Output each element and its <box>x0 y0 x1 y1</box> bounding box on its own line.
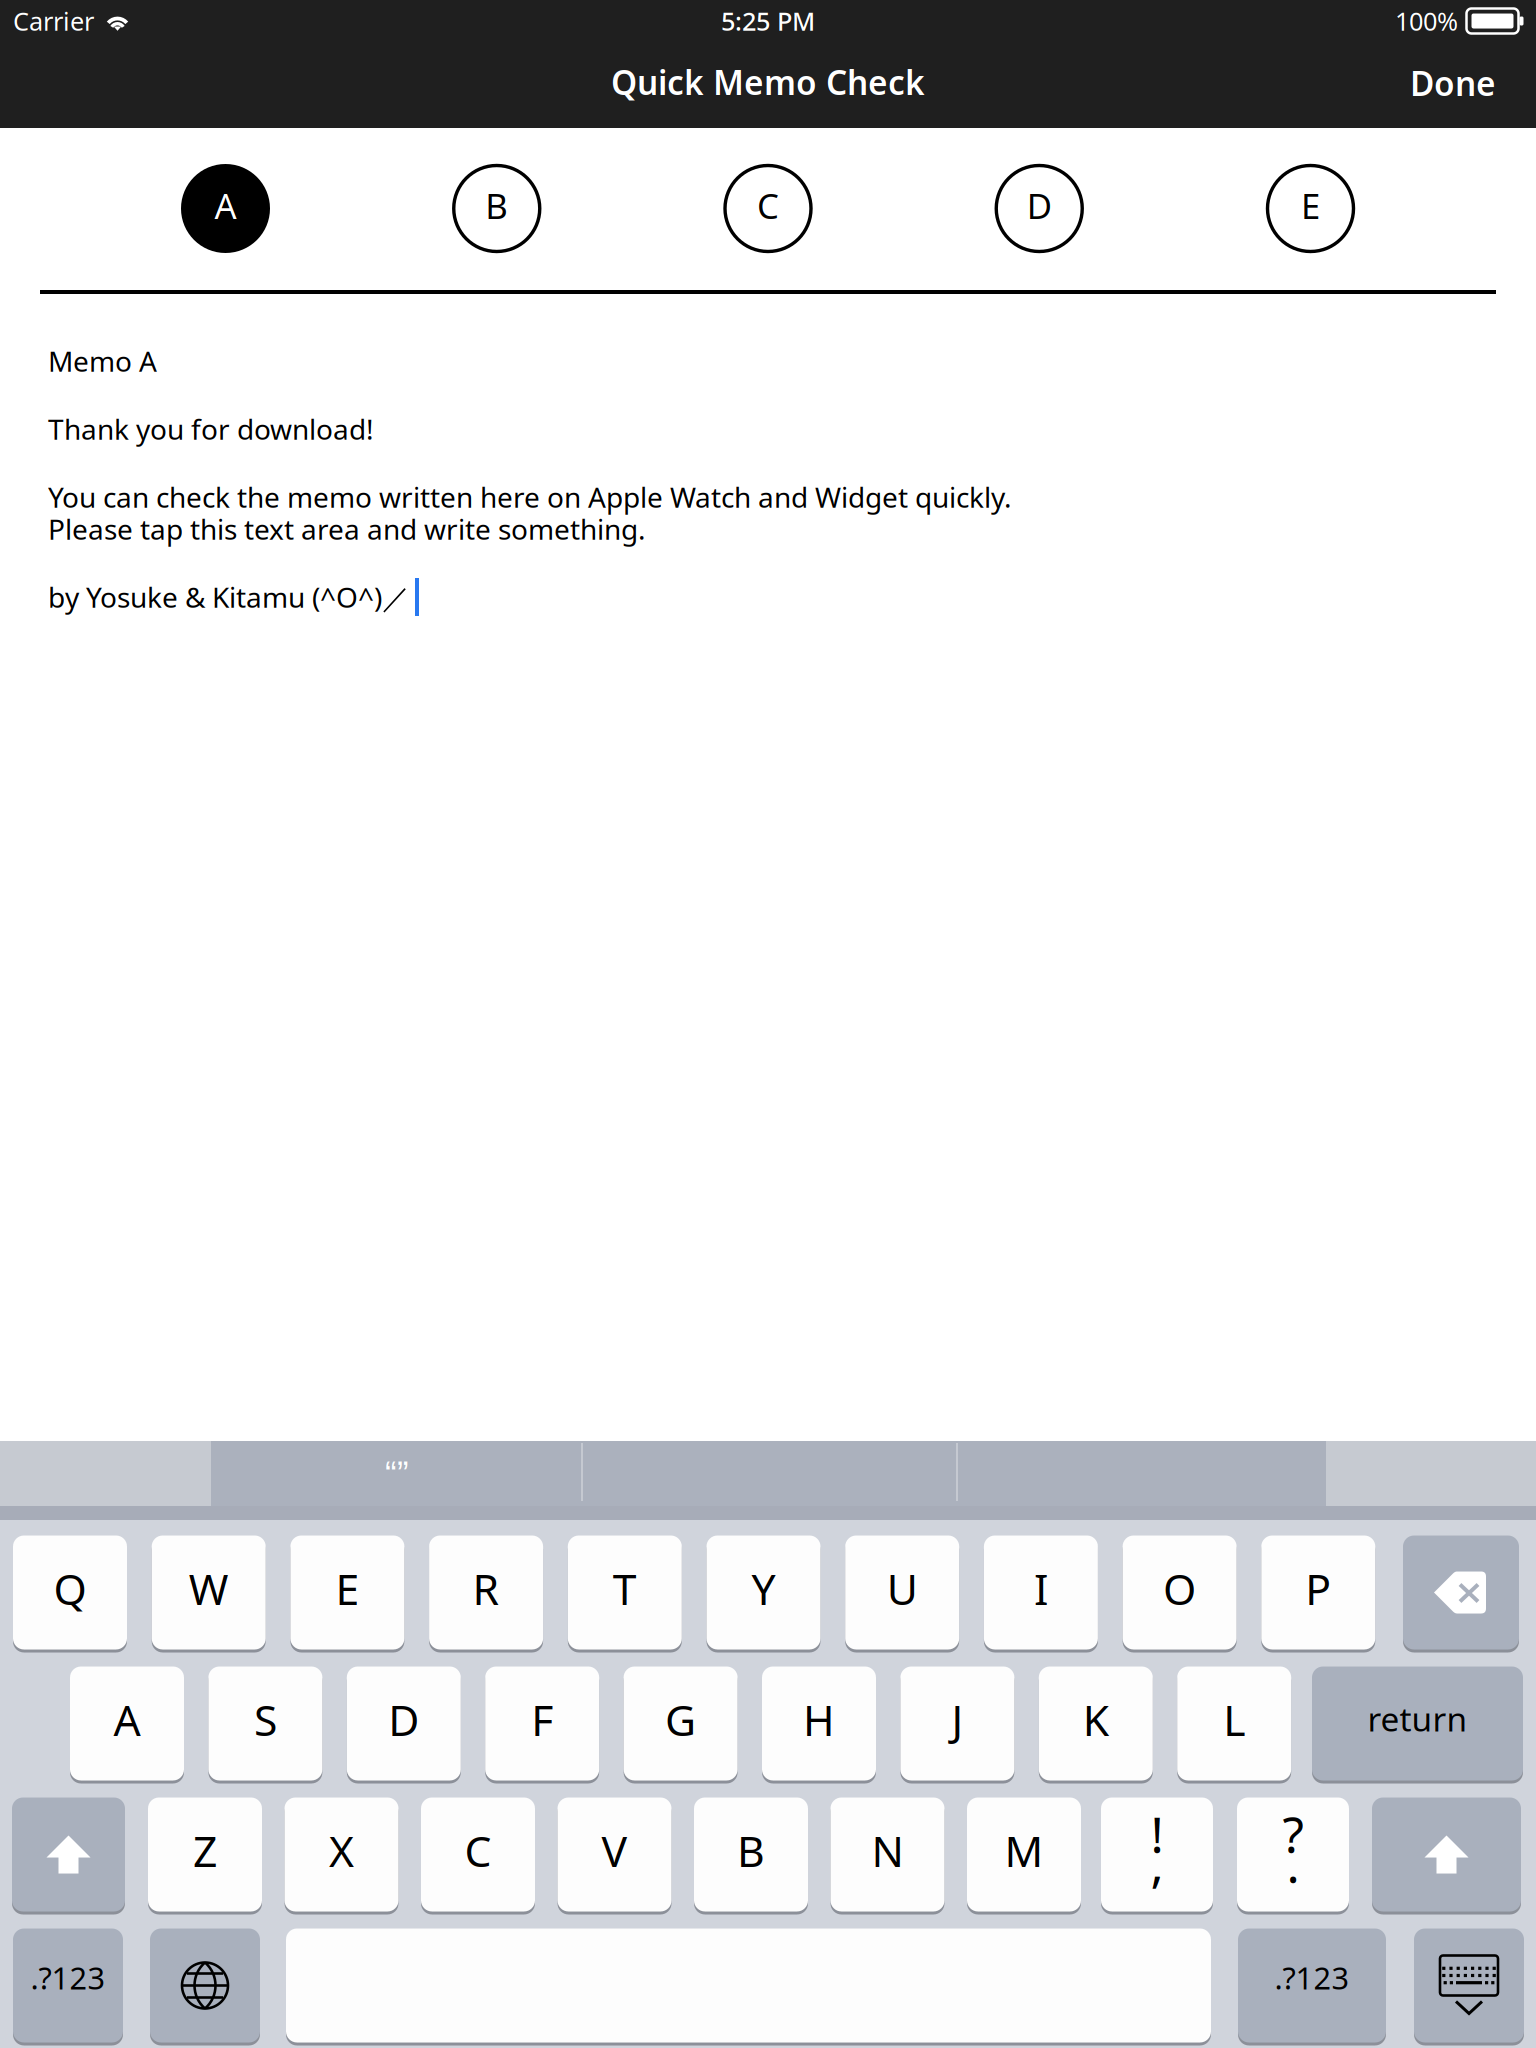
button[interactable]: C <box>723 164 812 253</box>
staticText: return <box>1367 1696 1467 1741</box>
staticText: U <box>887 1560 918 1617</box>
staticText: A <box>113 1691 140 1748</box>
button[interactable]: D <box>347 1665 461 1782</box>
staticText: Carrier <box>13 4 94 38</box>
staticText: Quick Memo Check <box>611 60 925 104</box>
staticText: V <box>601 1822 627 1879</box>
staticText: B <box>485 182 508 228</box>
staticText: N <box>871 1822 903 1879</box>
staticText: “” <box>385 1454 409 1493</box>
button[interactable]: S <box>208 1665 322 1782</box>
button[interactable]: J <box>900 1665 1014 1782</box>
button[interactable]: ! <box>1101 1796 1213 1913</box>
button[interactable]: B <box>694 1796 808 1913</box>
staticText: F <box>531 1691 553 1748</box>
staticText: Y <box>751 1560 775 1617</box>
staticText: M <box>1004 1822 1043 1879</box>
staticText: G <box>665 1691 696 1748</box>
button[interactable]: D <box>995 164 1084 253</box>
button[interactable]: F <box>485 1665 599 1782</box>
button[interactable]: Q <box>13 1534 127 1651</box>
staticText: ! <box>1150 1801 1163 1866</box>
staticText: .?123 <box>1274 1957 1349 1998</box>
staticText: , <box>1150 1831 1163 1896</box>
button[interactable]: N <box>830 1796 944 1913</box>
staticText: C <box>757 182 779 228</box>
button[interactable]: H <box>762 1665 876 1782</box>
button[interactable]: I <box>984 1534 1098 1651</box>
staticText: H <box>803 1691 835 1748</box>
button[interactable]: Shift <box>12 1796 125 1913</box>
staticText: 5:25 PM <box>721 4 815 38</box>
staticText: .?123 <box>30 1957 105 1998</box>
button[interactable]: B <box>452 164 541 253</box>
button[interactable]: O <box>1123 1534 1237 1651</box>
staticText: Thank you for download! <box>48 410 374 448</box>
button[interactable]: .?123 <box>13 1927 123 2044</box>
button[interactable]: ? <box>1237 1796 1349 1913</box>
button[interactable]: K <box>1039 1665 1153 1782</box>
button[interactable]: P <box>1261 1534 1375 1651</box>
button[interactable]: X <box>284 1796 398 1913</box>
staticText: Q <box>53 1560 86 1617</box>
button[interactable]: U <box>845 1534 959 1651</box>
staticText: C <box>464 1822 491 1879</box>
staticText: J <box>951 1691 963 1748</box>
staticText: T <box>613 1560 637 1617</box>
button[interactable]: W <box>152 1534 266 1651</box>
button[interactable]: C <box>421 1796 535 1913</box>
button[interactable]: space <box>286 1927 1211 2044</box>
staticText: O <box>1163 1560 1196 1617</box>
staticText: A <box>214 182 236 228</box>
button[interactable]: E <box>290 1534 404 1651</box>
button[interactable]: A <box>181 164 270 253</box>
button[interactable]: Y <box>706 1534 820 1651</box>
staticText: D <box>388 1691 419 1748</box>
button[interactable]: Memo A <box>0 0 1536 2048</box>
button[interactable]: .?123 <box>1238 1927 1386 2044</box>
staticText: ? <box>1282 1801 1303 1866</box>
staticText: Memo A <box>48 342 157 380</box>
button[interactable]: Delete <box>1403 1534 1519 1651</box>
staticText: R <box>473 1560 500 1617</box>
staticText: K <box>1083 1691 1109 1748</box>
staticText: I <box>1034 1560 1048 1617</box>
staticText: by Yosuke & Kitamu (^O^)／ <box>48 578 410 616</box>
staticText: Z <box>193 1822 217 1879</box>
staticText: S <box>254 1691 277 1748</box>
staticText: Please tap this text area and write some… <box>48 510 646 548</box>
button[interactable]: Hide keyboard <box>1414 1927 1524 2044</box>
staticText: W <box>189 1560 229 1617</box>
button[interactable]: Z <box>148 1796 262 1913</box>
button[interactable]: Shift <box>1372 1796 1521 1913</box>
button[interactable]: Next keyboard <box>150 1927 260 2044</box>
staticText: X <box>329 1822 354 1879</box>
staticText: E <box>1301 182 1320 228</box>
button[interactable]: R <box>429 1534 543 1651</box>
button[interactable]: G <box>624 1665 738 1782</box>
button[interactable]: A <box>70 1665 184 1782</box>
button[interactable]: E <box>1266 164 1355 253</box>
staticText: P <box>1305 1560 1331 1617</box>
staticText: L <box>1223 1691 1245 1748</box>
button[interactable]: V <box>557 1796 671 1913</box>
staticText: Done <box>1410 61 1496 105</box>
button[interactable]: L <box>1177 1665 1291 1782</box>
button[interactable]: M <box>967 1796 1081 1913</box>
staticText: E <box>335 1560 359 1617</box>
button[interactable]: T <box>568 1534 682 1651</box>
staticText: You can check the memo written here on A… <box>48 478 1012 516</box>
button[interactable]: Done <box>1396 51 1510 119</box>
staticText: D <box>1027 182 1052 228</box>
staticText: 100% <box>1395 4 1458 38</box>
button[interactable]: return <box>1312 1665 1523 1782</box>
staticText: . <box>1286 1831 1299 1896</box>
staticText: B <box>737 1822 765 1879</box>
